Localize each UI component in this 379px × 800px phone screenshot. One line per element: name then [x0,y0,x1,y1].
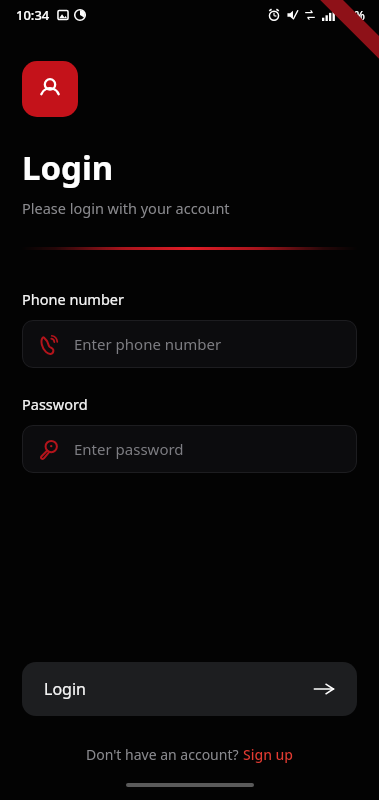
staticText: Enter password [74,439,184,459]
staticText: Password [22,394,88,414]
staticText: 10:34 [16,6,50,24]
staticText: Login [22,145,114,190]
other: Password [38,439,59,460]
staticText: Don't have an account? [86,745,243,764]
button[interactable]: Phone [22,320,357,368]
staticText: Sign up [243,745,294,764]
staticText: 30% [340,7,365,24]
button[interactable]: Sign up [243,745,294,764]
button[interactable]: Login [22,662,357,716]
staticText: Phone number [22,289,124,309]
button[interactable]: Password [22,425,357,473]
other: Phone [38,334,59,355]
staticText: Enter phone number [74,334,222,354]
staticText: Login [44,678,86,700]
staticText: Please login with your account [22,198,230,218]
